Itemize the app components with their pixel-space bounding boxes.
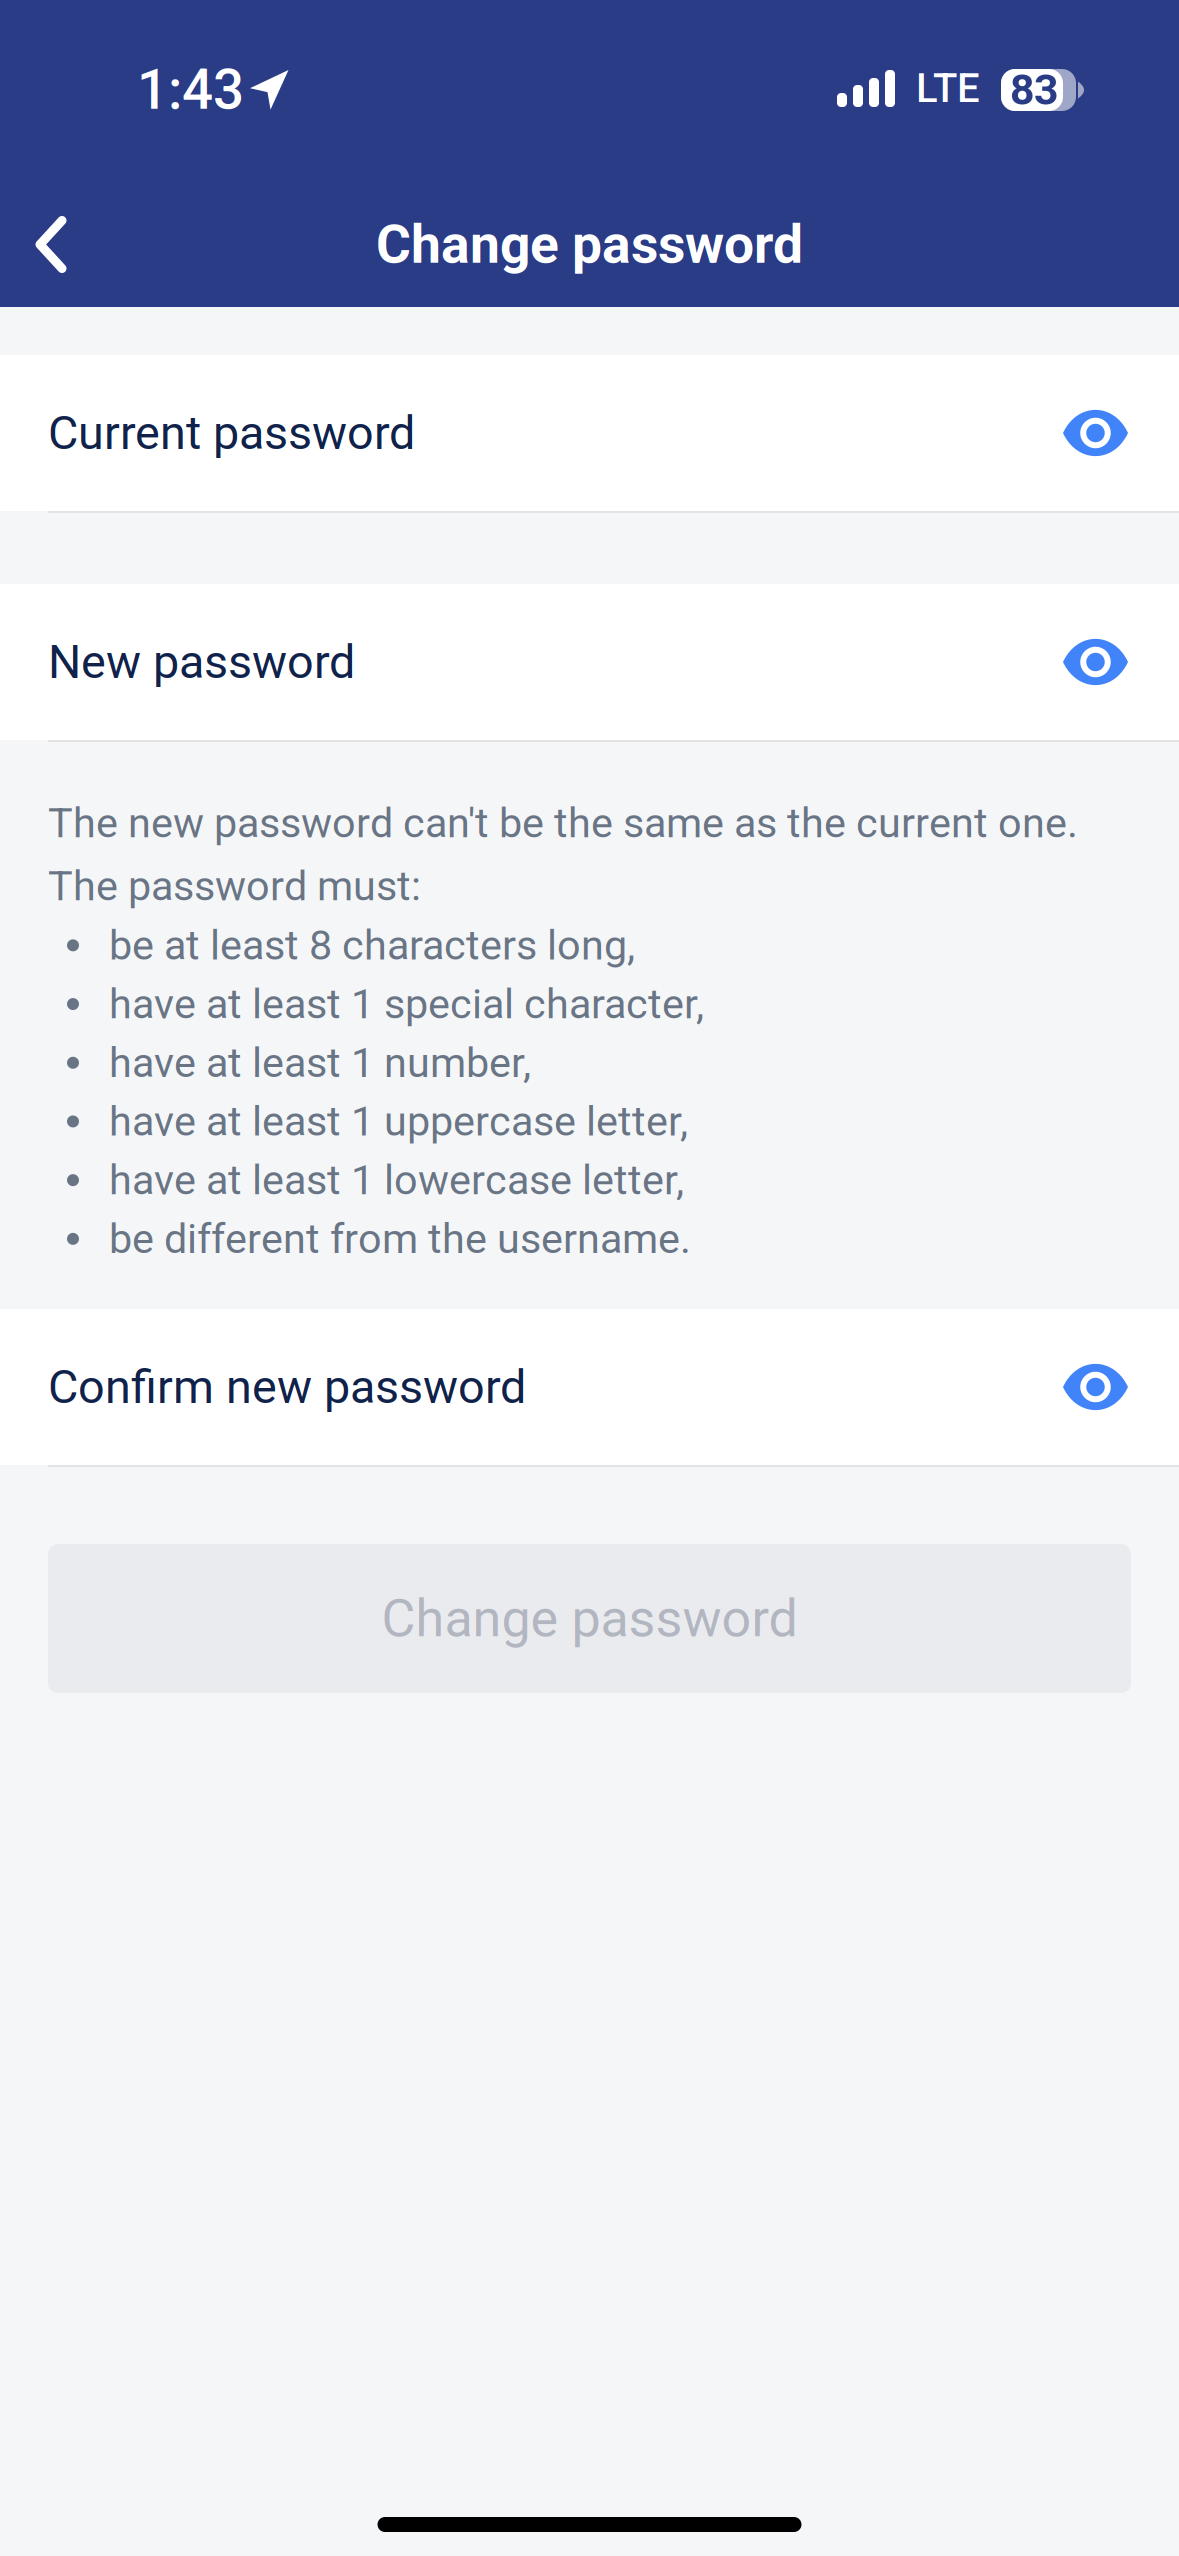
button[interactable]: Change password [48,1544,1131,1693]
staticText: 83 [1010,65,1058,115]
staticText: have at least 1 uppercase letter, [109,1097,688,1146]
staticText: be at least 8 characters long, [109,921,635,969]
staticText: LTE [916,65,980,112]
button[interactable]: Current password [0,355,1179,513]
button[interactable]: Confirm new password [0,1309,1179,1467]
staticText: The password must: [48,862,421,910]
button[interactable]: New password [0,584,1179,742]
staticText: be different from the username. [109,1215,691,1263]
button[interactable]: Back [0,166,102,323]
staticText: have at least 1 lowercase letter, [109,1156,684,1204]
staticText: 1:43 [137,58,244,122]
staticText: Current password [48,406,415,460]
staticText: The new password can't be the same as th… [48,799,1078,847]
staticText: Change password [376,213,803,276]
staticText: have at least 1 number, [109,1038,531,1087]
staticText: New password [48,635,355,689]
staticText: Confirm new password [48,1360,526,1414]
staticText: have at least 1 special character, [109,980,704,1028]
staticText: Change password [381,1588,797,1649]
